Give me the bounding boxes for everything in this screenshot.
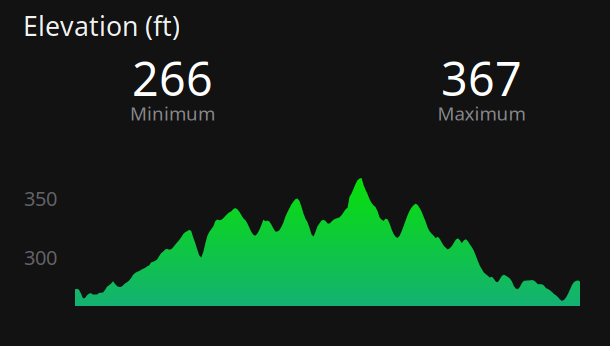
staticText: 266 [132, 47, 213, 109]
staticText: Minimum [130, 101, 215, 126]
staticText: Maximum [437, 101, 525, 126]
button[interactable]: Elevation chart, minimum 266 feet, maxim… [0, 0, 610, 346]
staticText: 350 [24, 185, 57, 212]
staticText: 367 [441, 47, 522, 109]
staticText: Elevation (ft) [23, 8, 180, 43]
staticText: 300 [24, 244, 57, 271]
